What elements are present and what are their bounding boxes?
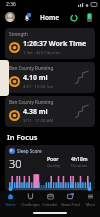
staticText: Duration	[71, 163, 88, 168]
button[interactable]: Ben County Running	[5, 62, 95, 93]
button[interactable]: More	[80, 191, 100, 208]
staticText: 4:57 · 10:52 /mi	[23, 84, 53, 90]
staticText: Home	[40, 13, 59, 22]
staticText: 30	[9, 156, 22, 171]
staticText: In Focus	[7, 132, 38, 142]
staticText: 4.10 mi	[23, 73, 48, 83]
button[interactable]: Profile	[5, 12, 15, 22]
staticText: Quality	[47, 163, 61, 168]
staticText: 1 Set · 423 Calories	[23, 50, 61, 56]
button[interactable]: Calendar	[40, 191, 60, 208]
button[interactable]: News Feed	[60, 191, 80, 208]
button[interactable]: Device battery	[84, 12, 95, 23]
button[interactable]: Notifications	[21, 12, 32, 23]
staticText: More	[86, 202, 95, 207]
button[interactable]: Ben County Running	[5, 96, 95, 127]
button[interactable]: Challenges	[20, 191, 40, 208]
button[interactable]: Open drawer	[0, 60, 9, 96]
staticText: Sleep Score	[17, 148, 42, 154]
staticText: Calendar	[42, 202, 58, 207]
staticText: 4h18m	[71, 156, 88, 163]
button[interactable]: Sync	[68, 12, 79, 23]
staticText: 4.38 mi	[23, 107, 48, 117]
button[interactable]: Strength	[5, 28, 95, 59]
staticText: 1:26:37 Work Time	[23, 39, 87, 49]
staticText: Strength	[9, 31, 28, 37]
staticText: Ben County Running	[9, 65, 54, 71]
staticText: Challenges	[21, 202, 40, 207]
staticText: News Feed	[61, 202, 80, 207]
staticText: Home	[5, 202, 16, 207]
button[interactable]: Home	[0, 191, 20, 208]
staticText: 2:36	[6, 1, 16, 8]
staticText: Poor	[47, 156, 59, 163]
button[interactable]: Sleep Score	[5, 145, 95, 191]
staticText: 9/11 · 11:28 AM	[23, 118, 54, 124]
staticText: Ben County Running	[9, 99, 54, 105]
